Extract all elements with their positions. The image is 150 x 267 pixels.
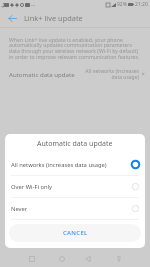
button[interactable]: Recent apps	[21, 250, 43, 267]
button[interactable]: Hide keyboard	[108, 250, 130, 267]
button[interactable]: Over Wi-Fi only	[5, 176, 145, 197]
button[interactable]: Automatic data update	[0, 64, 150, 84]
button[interactable]: Home	[51, 250, 73, 267]
staticText: All networks (increases data usage)	[11, 161, 131, 169]
staticText: Never	[11, 205, 131, 213]
button[interactable]: All networks (increases data usage)	[5, 154, 145, 175]
button[interactable]: CANCEL	[9, 224, 141, 242]
staticText: Automatic data update	[37, 139, 113, 149]
staticText: All networks (increases data usage)	[85, 68, 139, 81]
staticText: CANCEL	[63, 229, 88, 237]
button[interactable]: Back	[77, 250, 99, 267]
staticText: 92%	[117, 1, 127, 8]
staticText: When Link+ live update is enabled, your …	[9, 36, 140, 61]
staticText: Link+ live update	[24, 13, 83, 23]
staticText: Over Wi-Fi only	[11, 183, 131, 191]
staticText: 21:20	[135, 1, 148, 8]
button[interactable]: Never	[5, 198, 145, 219]
staticText: Automatic data update	[9, 70, 75, 78]
button[interactable]: Back	[0, 9, 24, 27]
